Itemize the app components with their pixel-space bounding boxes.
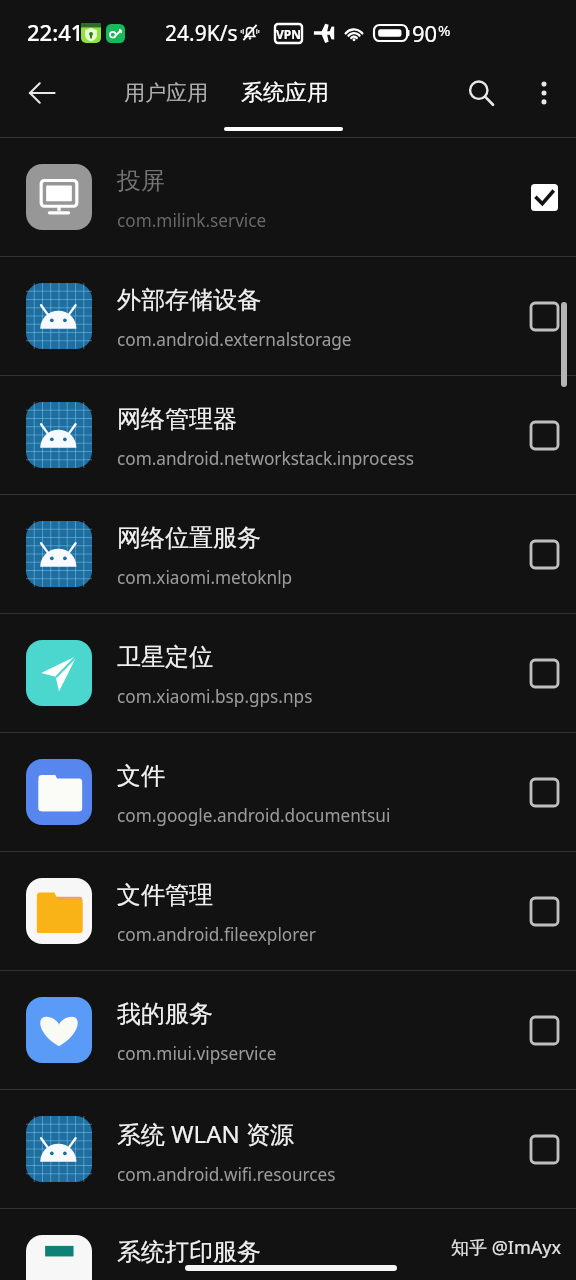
staticText: 知乎 @ImAyx [451, 1235, 561, 1260]
button[interactable]: Select 我的服务 [522, 1008, 566, 1052]
staticText: 系统打印服务 [117, 1237, 261, 1267]
staticText: 系统应用 [241, 79, 329, 107]
staticText: 用户应用 [124, 80, 208, 106]
staticText: % [438, 20, 451, 40]
button[interactable]: Select 卫星定位 [522, 651, 566, 695]
staticText: com.android.externalstorage [117, 328, 352, 351]
staticText: 网络位置服务 [117, 523, 261, 553]
button[interactable]: 用户应用 [104, 68, 228, 118]
staticText: 文件管理 [117, 880, 213, 910]
button[interactable]: Select 网络位置服务 [522, 532, 566, 576]
staticText: 我的服务 [117, 999, 213, 1029]
button[interactable]: 文件 [0, 733, 576, 851]
button[interactable]: 系统应用 [221, 67, 349, 119]
staticText: com.android.networkstack.inprocess [117, 447, 414, 470]
staticText: 外部存储设备 [117, 285, 261, 315]
button[interactable]: 系统 WLAN 资源 [0, 1090, 576, 1208]
staticText: 卫星定位 [117, 642, 213, 672]
button[interactable]: Select 网络管理器 [522, 413, 566, 457]
staticText: com.milink.service [117, 209, 267, 232]
staticText: VPN [276, 26, 302, 42]
button[interactable]: 网络位置服务 [0, 495, 576, 613]
button[interactable]: 网络管理器 [0, 376, 576, 494]
button[interactable]: Search [456, 68, 506, 118]
staticText: 90 [412, 18, 438, 48]
button[interactable]: Select 外部存储设备 [522, 294, 566, 338]
button[interactable]: 系统打印服务 [0, 1209, 576, 1280]
staticText: com.xiaomi.bsp.gps.nps [117, 685, 313, 708]
staticText: 网络管理器 [117, 404, 237, 434]
staticText: 22:41 [27, 17, 84, 47]
button[interactable]: Select 投屏 [522, 175, 566, 219]
button[interactable]: 我的服务 [0, 971, 576, 1089]
button[interactable]: Select 文件 [522, 770, 566, 814]
button[interactable]: 卫星定位 [0, 614, 576, 732]
button[interactable]: 外部存储设备 [0, 257, 576, 375]
staticText: com.android.fileexplorer [117, 923, 316, 946]
staticText: com.miui.vipservice [117, 1042, 277, 1065]
staticText: 文件 [117, 761, 165, 791]
button[interactable]: Select 系统 WLAN 资源 [522, 1127, 566, 1171]
staticText: com.google.android.documentsui [117, 804, 391, 827]
staticText: 投屏 [117, 166, 165, 196]
staticText: 系统 WLAN 资源 [117, 1117, 294, 1150]
staticText: com.xiaomi.metoknlp [117, 566, 293, 589]
button[interactable]: 投屏 [0, 138, 576, 256]
staticText: com.android.wifi.resources [117, 1163, 336, 1186]
staticText: 24.9K/s [165, 19, 238, 48]
button[interactable]: 文件管理 [0, 852, 576, 970]
button[interactable]: More options [519, 68, 569, 118]
button[interactable]: Select 文件管理 [522, 889, 566, 933]
button[interactable]: Back [17, 68, 67, 118]
